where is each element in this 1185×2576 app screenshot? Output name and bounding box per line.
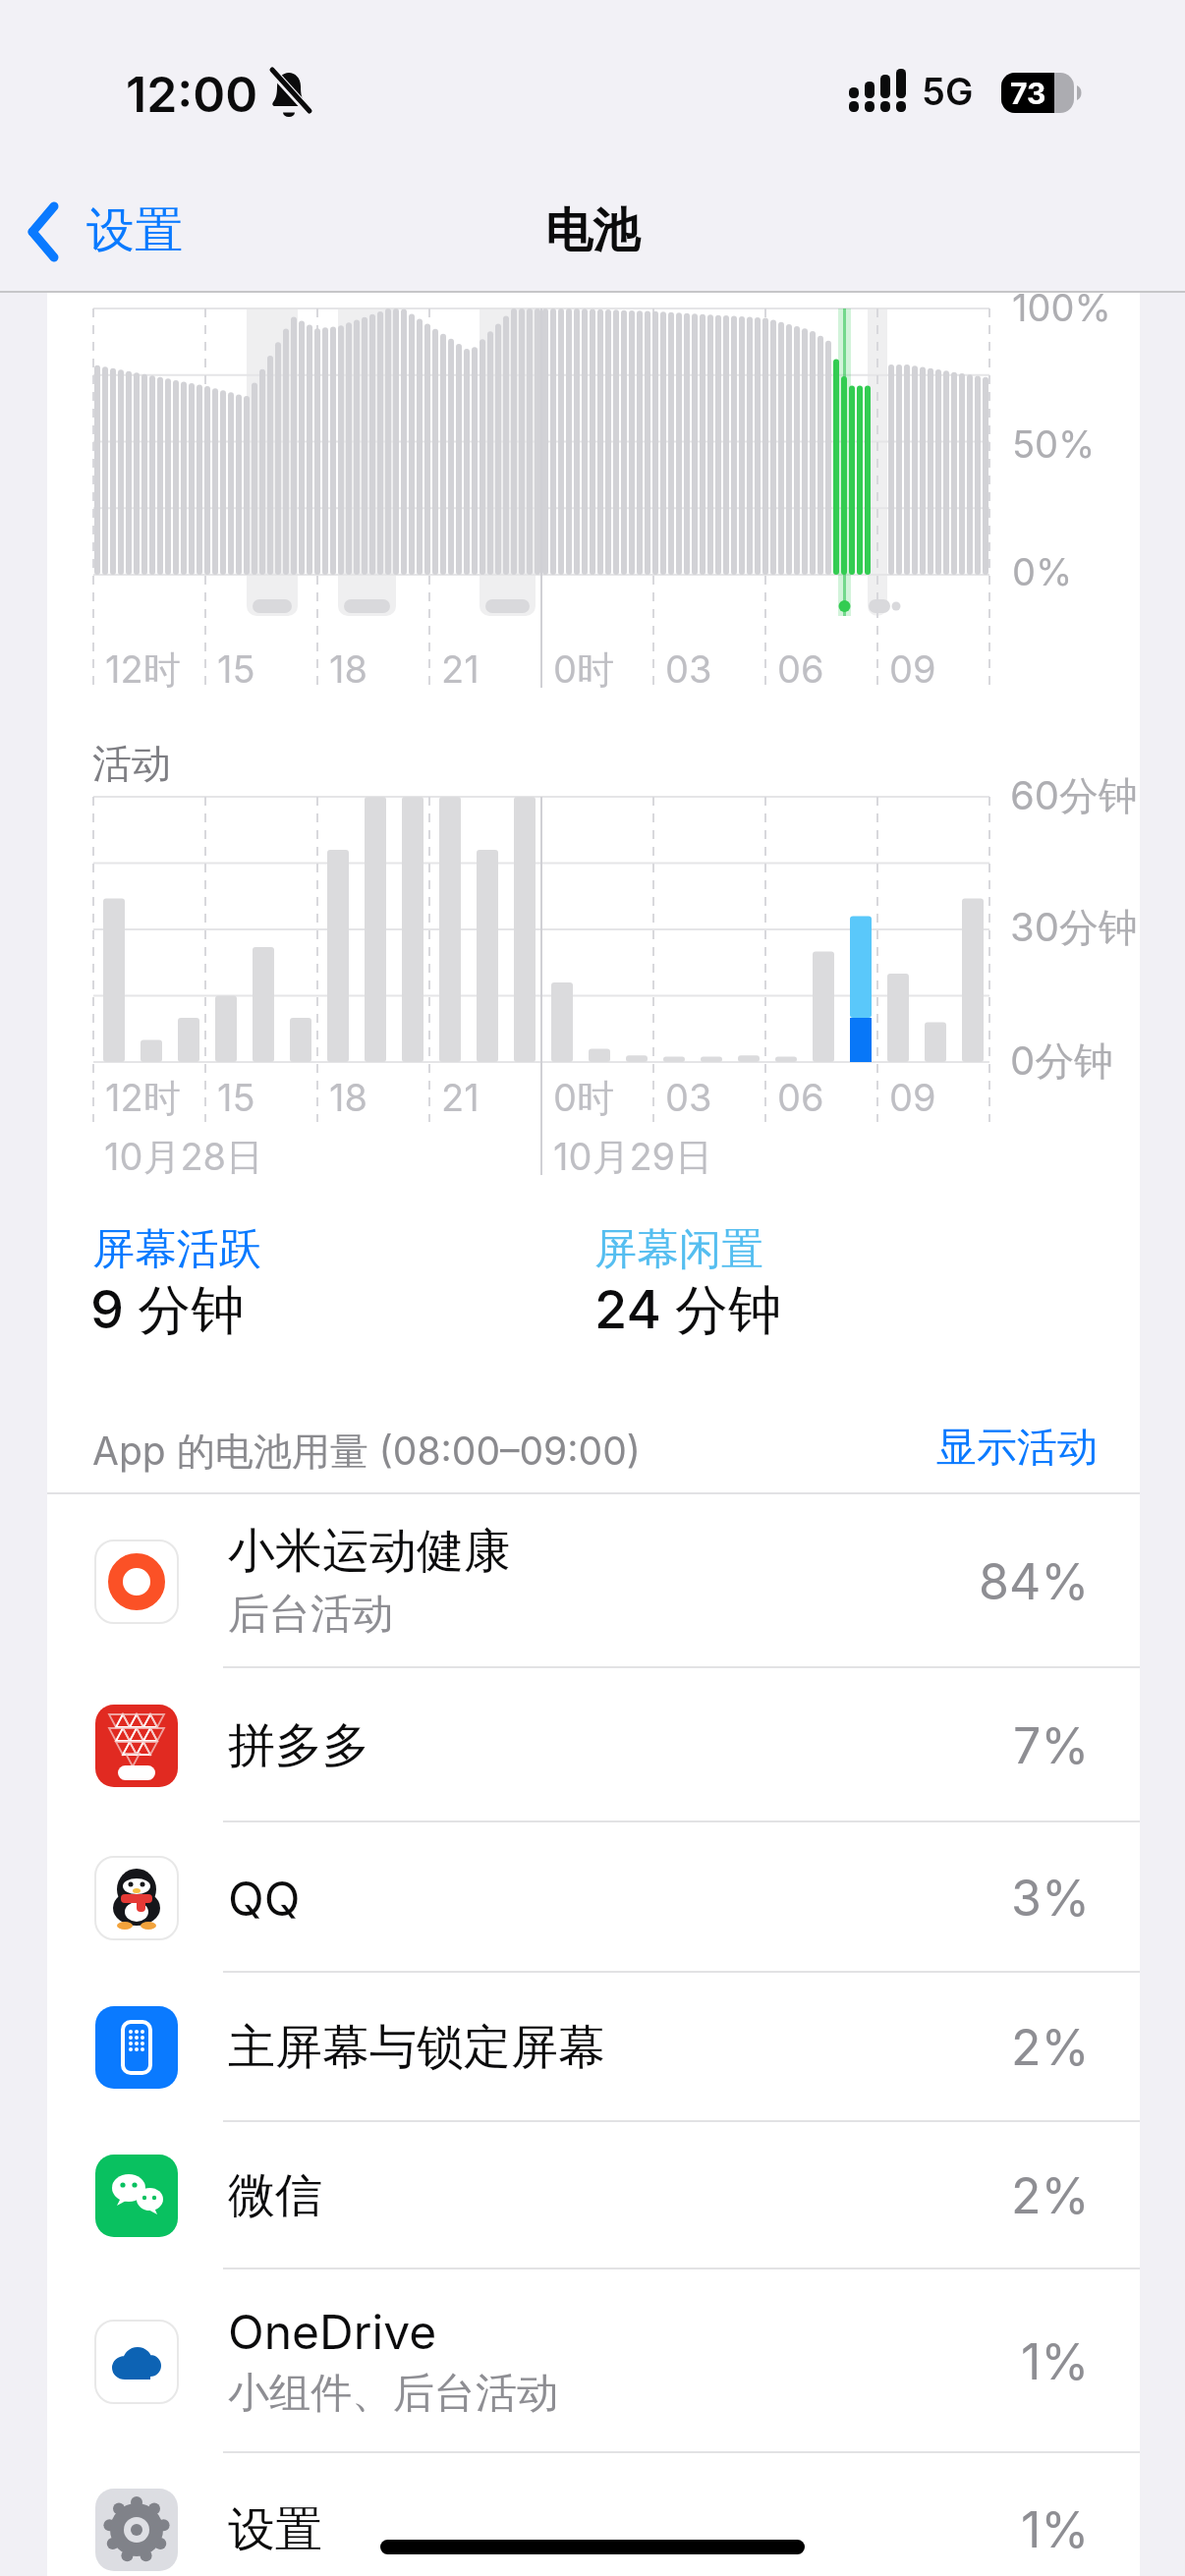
staticText: 21 bbox=[441, 646, 480, 692]
button[interactable]: OneDrive bbox=[0, 2269, 1185, 2453]
staticText: 03 bbox=[665, 1075, 712, 1120]
staticText: 设置 bbox=[228, 2500, 322, 2559]
staticText: App 的电池用量 (08:00–09:00) bbox=[92, 1428, 641, 1476]
staticText: 2% bbox=[1011, 2018, 1090, 2077]
staticText: 60分钟 bbox=[1010, 771, 1139, 821]
staticText: 小组件、后台活动 bbox=[228, 2368, 558, 2420]
staticText: 12时 bbox=[105, 646, 181, 694]
staticText: 7% bbox=[1013, 1716, 1090, 1775]
staticText: 10月29日 bbox=[553, 1134, 713, 1181]
staticText: 1% bbox=[1021, 2332, 1090, 2391]
staticText: 9 分钟 bbox=[90, 1277, 245, 1344]
staticText: 03 bbox=[665, 646, 712, 692]
staticText: 显示活动 bbox=[936, 1423, 1098, 1474]
staticText: 21 bbox=[441, 1075, 480, 1120]
staticText: 06 bbox=[777, 646, 824, 692]
staticText: 后台活动 bbox=[228, 1589, 393, 1641]
staticText: 1% bbox=[1021, 2500, 1090, 2559]
staticText: 5G bbox=[922, 69, 974, 114]
staticText: 3% bbox=[1011, 1869, 1090, 1928]
staticText: 09 bbox=[889, 1075, 936, 1120]
button[interactable]: 设置 bbox=[0, 2453, 1185, 2576]
staticText: 主屏幕与锁定屏幕 bbox=[228, 2018, 605, 2077]
staticText: 15 bbox=[217, 1075, 255, 1120]
button[interactable]: 设置 bbox=[79, 177, 206, 285]
staticText: 屏幕活跃 bbox=[92, 1223, 261, 1276]
staticText: 50% bbox=[1012, 421, 1096, 467]
staticText: OneDrive bbox=[228, 2303, 437, 2360]
staticText: 活动 bbox=[92, 739, 171, 788]
staticText: 0时 bbox=[553, 646, 614, 694]
button[interactable]: QQ bbox=[0, 1822, 1185, 1973]
button[interactable]: 拼多多 bbox=[0, 1668, 1185, 1822]
staticText: 0时 bbox=[553, 1075, 614, 1122]
staticText: 12时 bbox=[105, 1075, 181, 1122]
staticText: 设置 bbox=[86, 200, 183, 261]
staticText: 100% bbox=[1012, 285, 1111, 330]
staticText: 18 bbox=[329, 1075, 367, 1120]
staticText: 微信 bbox=[228, 2166, 322, 2225]
staticText: 73 bbox=[1010, 76, 1046, 111]
staticText: 拼多多 bbox=[228, 1716, 369, 1775]
button[interactable]: 显示活动 bbox=[842, 1417, 1098, 1480]
staticText: 15 bbox=[217, 646, 255, 692]
staticText: 84% bbox=[979, 1552, 1090, 1611]
staticText: 18 bbox=[329, 646, 367, 692]
staticText: 10月28日 bbox=[104, 1134, 264, 1181]
button[interactable]: 微信 bbox=[0, 2122, 1185, 2269]
staticText: 30分钟 bbox=[1010, 903, 1138, 953]
staticText: 2% bbox=[1011, 2166, 1090, 2225]
staticText: QQ bbox=[228, 1870, 301, 1927]
staticText: 小米运动健康 bbox=[228, 1522, 511, 1581]
staticText: 0分钟 bbox=[1010, 1036, 1114, 1087]
staticText: 0% bbox=[1012, 549, 1073, 594]
staticText: 屏幕闲置 bbox=[594, 1223, 763, 1276]
button[interactable]: 主屏幕与锁定屏幕 bbox=[0, 1973, 1185, 2122]
staticText: 电池 bbox=[545, 201, 640, 260]
staticText: 24 分钟 bbox=[594, 1277, 782, 1344]
staticText: 09 bbox=[889, 646, 936, 692]
staticText: 06 bbox=[777, 1075, 824, 1120]
staticText: 12:00 bbox=[126, 65, 258, 124]
button[interactable]: 小米运动健康 bbox=[0, 1494, 1185, 1668]
